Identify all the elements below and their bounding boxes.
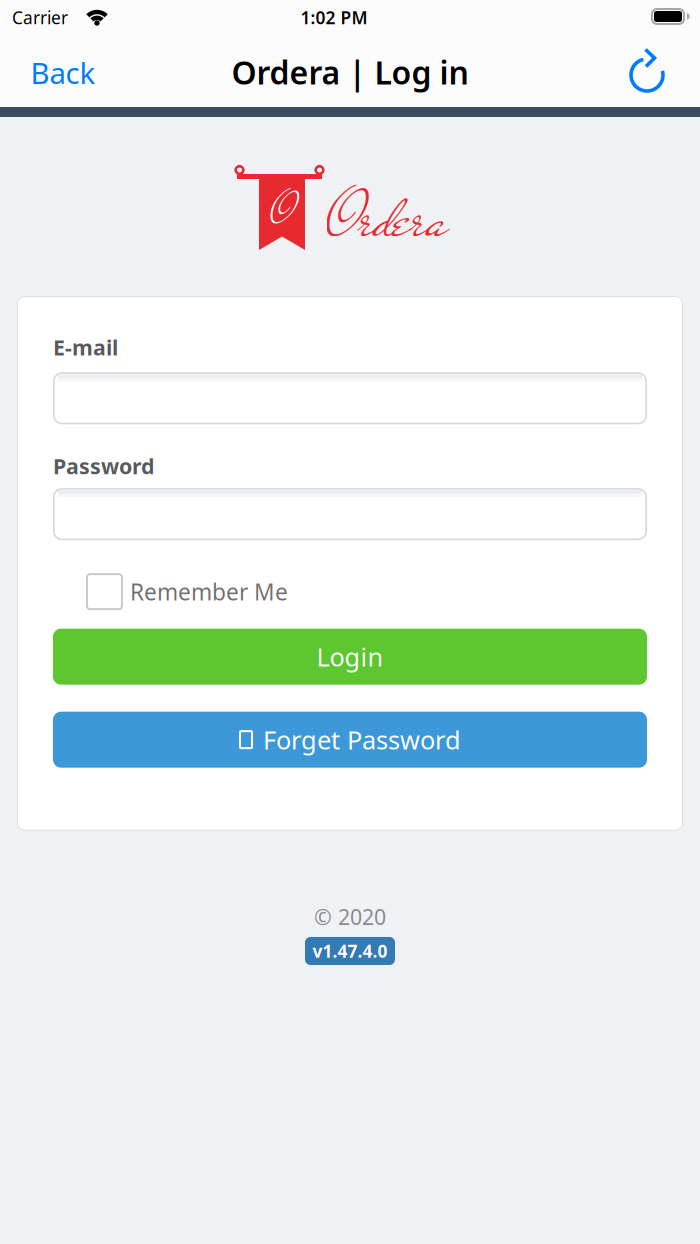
button[interactable]: Login bbox=[53, 629, 647, 685]
staticText: Ordera | Log in bbox=[231, 51, 468, 93]
staticText: Carrier bbox=[12, 6, 68, 29]
staticText: Back bbox=[30, 53, 95, 92]
button[interactable]: Refresh bbox=[617, 43, 677, 103]
staticText: 1:02 PM bbox=[300, 6, 367, 29]
staticText: O bbox=[270, 180, 291, 244]
button[interactable]: Remember Me bbox=[86, 573, 288, 610]
staticText: Remember Me bbox=[130, 577, 288, 607]
button[interactable]: Forget Password bbox=[53, 712, 647, 768]
button[interactable]: Back bbox=[13, 38, 113, 107]
staticText: E-mail bbox=[53, 333, 118, 361]
staticText: Password bbox=[53, 452, 154, 480]
staticText: Forget Password bbox=[263, 723, 461, 756]
staticText: Login bbox=[316, 640, 383, 673]
staticText: v1.47.4.0 bbox=[312, 939, 387, 962]
staticText: Ordera bbox=[326, 172, 447, 266]
staticText: © 2020 bbox=[314, 903, 386, 931]
